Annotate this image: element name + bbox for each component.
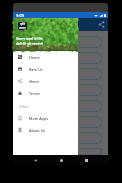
button[interactable]: Recent apps [83, 157, 89, 163]
staticText: Home [29, 55, 40, 60]
staticText: 9:09 [16, 13, 24, 18]
staticText: Other [19, 104, 29, 108]
button[interactable]: Home [58, 157, 64, 163]
staticText: खेती की पूरी जानकारी [16, 41, 43, 46]
button[interactable]: App logo [18, 22, 27, 30]
staticText: Rate Us [29, 67, 43, 72]
button[interactable]: Share [98, 21, 105, 28]
button[interactable]: Terms [13, 87, 78, 99]
button[interactable]: Home [13, 51, 78, 63]
button[interactable]: More Apps [13, 112, 78, 124]
button[interactable] [19, 68, 102, 80]
button[interactable] [19, 100, 102, 112]
button[interactable] [19, 116, 102, 128]
button[interactable] [19, 36, 102, 48]
staticText: किसान भाइयों के लिए [16, 36, 43, 41]
staticText: About Us [29, 128, 46, 133]
staticText: कृषि सलाह [19, 22, 26, 30]
button[interactable]: Rate Us [13, 63, 78, 75]
button[interactable] [19, 132, 102, 144]
button[interactable]: Back [32, 157, 38, 163]
staticText: Terms [29, 91, 40, 96]
button[interactable] [19, 52, 102, 64]
button[interactable] [19, 84, 102, 96]
button[interactable]: About Us [13, 124, 78, 136]
staticText: Share [29, 79, 40, 84]
button[interactable] [19, 148, 102, 155]
button[interactable]: Share [13, 75, 78, 87]
staticText: More Apps [29, 116, 48, 121]
